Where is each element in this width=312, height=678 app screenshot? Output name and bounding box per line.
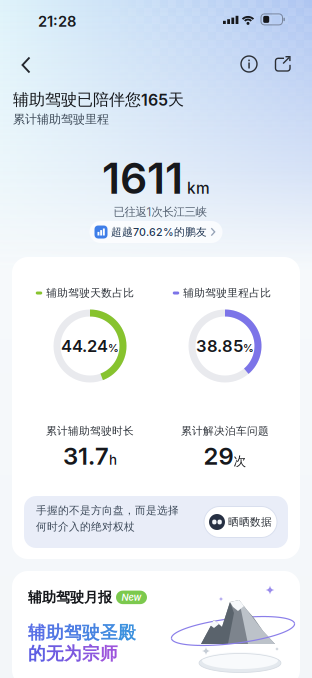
staticText: 累计辅助驾驶里程 <box>13 112 109 126</box>
button[interactable]: Info <box>234 49 264 79</box>
staticText: 31.7h <box>63 442 117 470</box>
staticText: 为 <box>64 643 82 664</box>
button[interactable]: 晒晒数据 <box>204 506 277 537</box>
staticText: 1611 km <box>102 153 210 203</box>
staticText: 殿 <box>118 622 136 643</box>
button[interactable]: 辅助驾驶月报 <box>12 571 300 678</box>
staticText: 累计解决泊车问题 <box>181 425 269 437</box>
staticText: 驶 <box>82 622 100 643</box>
staticText: 辅助驾驶里程占比 <box>183 287 271 299</box>
staticText: 超越70.62%的鹏友 <box>111 226 207 238</box>
staticText: 38.85% <box>196 336 254 356</box>
staticText: 29次 <box>203 442 246 470</box>
staticText: 辅助驾驶天数占比 <box>46 287 134 299</box>
staticText: 手握的不是方向盘，而是选择 <box>36 504 179 517</box>
staticText: 辅助驾驶月报 <box>28 589 112 606</box>
staticText: 的 <box>28 643 46 664</box>
staticText: 何时介入的绝对权杖 <box>36 520 135 533</box>
staticText: 辅 <box>28 622 46 643</box>
staticText: 44.24% <box>61 336 119 356</box>
staticText: 驾 <box>64 622 82 643</box>
staticText: New <box>121 592 141 603</box>
staticText: 累计辅助驾驶时长 <box>46 425 134 437</box>
button[interactable]: Back <box>8 47 44 83</box>
staticText: 宗 <box>82 643 100 664</box>
staticText: 已往返1次长江三峡 <box>113 205 206 219</box>
button[interactable]: 超越70.62%的鹏友 <box>89 221 222 243</box>
staticText: 师 <box>100 643 118 664</box>
staticText: 21:28 <box>38 13 76 30</box>
staticText: 辅助驾驶已陪伴您165天 <box>13 90 184 109</box>
button[interactable]: Share <box>268 49 298 79</box>
staticText: 无 <box>46 643 64 664</box>
staticText: 晒晒数据 <box>228 516 272 528</box>
staticText: 助 <box>46 622 64 643</box>
staticText: 圣 <box>100 622 118 643</box>
